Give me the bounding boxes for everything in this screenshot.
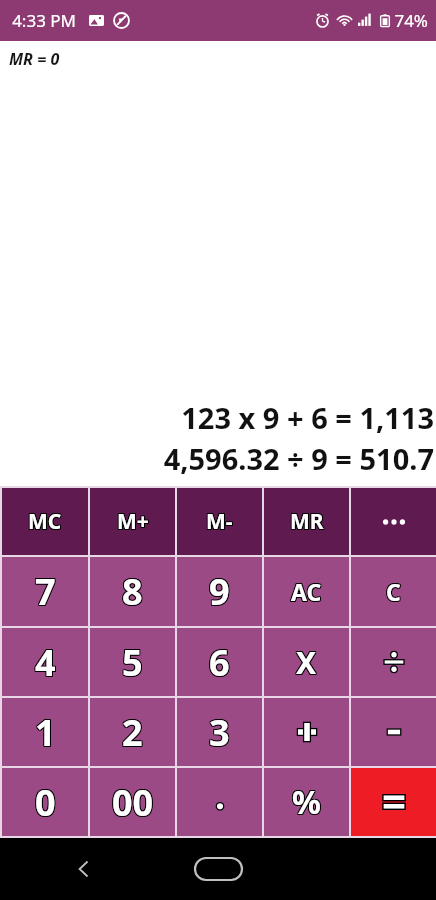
staticText: 5 <box>123 637 144 686</box>
button[interactable]: 6 <box>177 628 262 696</box>
button[interactable] <box>351 488 436 555</box>
staticText: 9 <box>209 567 230 616</box>
staticText: 0 <box>34 779 55 828</box>
staticText: MC <box>27 508 61 537</box>
staticText: M+ <box>117 507 149 536</box>
button[interactable]: 4 <box>2 628 88 696</box>
staticText: 00 <box>112 777 154 826</box>
staticText: 2 <box>123 707 144 756</box>
button[interactable]: MR <box>264 488 349 555</box>
staticText: MR = 0 <box>9 48 60 70</box>
button[interactable]: MC <box>2 488 88 555</box>
staticText: 4 <box>35 638 56 687</box>
button[interactable]: X <box>264 628 349 696</box>
button[interactable]: AC <box>264 557 349 626</box>
button[interactable]: 00 <box>90 768 175 836</box>
staticText: 2 <box>122 709 143 758</box>
staticText: 5 <box>121 638 142 687</box>
button[interactable] <box>351 768 436 836</box>
button[interactable]: 1 <box>2 698 88 766</box>
staticText: AC <box>291 576 322 607</box>
staticText: 0 <box>36 777 57 826</box>
staticText: C <box>385 575 400 606</box>
staticText: 6 <box>208 638 229 687</box>
staticText: 4,596.32 ÷ 9 = 510.7 <box>163 439 434 478</box>
staticText: 6 <box>209 637 230 686</box>
staticText: C <box>387 577 402 608</box>
button[interactable]: Back <box>62 847 106 891</box>
staticText: 3 <box>210 707 231 756</box>
button[interactable] <box>351 698 436 766</box>
staticText: 4 <box>34 639 55 688</box>
staticText: 6 <box>210 637 231 686</box>
button[interactable]: 8 <box>90 557 175 626</box>
staticText: 1 <box>34 707 55 756</box>
staticText: 9 <box>209 566 230 615</box>
button[interactable] <box>177 768 262 836</box>
button[interactable]: M+ <box>90 488 175 555</box>
staticText: 7 <box>35 567 56 616</box>
staticText: 7 <box>34 566 55 615</box>
staticText: % <box>291 779 320 823</box>
staticText: M- <box>207 507 234 536</box>
staticText: 00 <box>113 777 155 826</box>
staticText: MR <box>291 508 325 537</box>
staticText: MR <box>290 508 324 537</box>
staticText: 00 <box>112 778 154 827</box>
button[interactable]: 3 <box>177 698 262 766</box>
staticText: 6 <box>209 639 230 688</box>
staticText: M+ <box>116 506 148 535</box>
staticText: 7 <box>35 568 56 617</box>
staticText: M- <box>207 508 234 537</box>
staticText: 5 <box>121 639 142 688</box>
staticText: % <box>291 781 320 825</box>
button[interactable]: 9 <box>177 557 262 626</box>
staticText: 7 <box>36 568 57 617</box>
staticText: 3 <box>209 709 230 758</box>
staticText: 00 <box>113 779 155 828</box>
staticText: 3 <box>209 707 230 756</box>
staticText: 4 <box>36 638 57 687</box>
staticText: 4 <box>34 637 55 686</box>
staticText: 4 <box>34 638 55 687</box>
staticText: 5 <box>121 637 142 686</box>
staticText: 2 <box>121 707 142 756</box>
staticText: 8 <box>122 568 143 617</box>
staticText: 3 <box>208 709 229 758</box>
button[interactable]: % <box>264 768 349 836</box>
button[interactable]: C <box>351 557 436 626</box>
staticText: MC <box>29 507 63 536</box>
staticText: MR <box>289 508 323 537</box>
staticText: M+ <box>118 506 150 535</box>
staticText: M+ <box>117 506 149 535</box>
staticText: 0 <box>35 778 56 827</box>
staticText: 9 <box>210 568 231 617</box>
button[interactable]: 7 <box>2 557 88 626</box>
staticText: M- <box>205 507 232 536</box>
button[interactable] <box>351 628 436 696</box>
staticText: 9 <box>208 567 229 616</box>
staticText: AC <box>290 576 321 607</box>
staticText: 4 <box>36 637 57 686</box>
staticText: % <box>293 780 322 824</box>
staticText: MC <box>29 506 63 535</box>
staticText: C <box>387 576 402 607</box>
button[interactable]: 2 <box>90 698 175 766</box>
staticText: 8 <box>121 568 142 617</box>
staticText: 0 <box>34 777 55 826</box>
button[interactable] <box>264 698 349 766</box>
staticText: 3 <box>208 708 229 757</box>
button[interactable]: M- <box>177 488 262 555</box>
button[interactable]: 5 <box>90 628 175 696</box>
staticText: AC <box>292 576 323 607</box>
button[interactable]: 0 <box>2 768 88 836</box>
staticText: 8 <box>122 566 143 615</box>
staticText: 9 <box>208 568 229 617</box>
staticText: M- <box>207 506 234 535</box>
staticText: AC <box>290 577 321 608</box>
staticText: 7 <box>34 567 55 616</box>
button[interactable]: Home <box>188 849 248 889</box>
staticText: X <box>296 643 317 684</box>
staticText: X <box>296 642 317 683</box>
staticText: 2 <box>123 709 144 758</box>
